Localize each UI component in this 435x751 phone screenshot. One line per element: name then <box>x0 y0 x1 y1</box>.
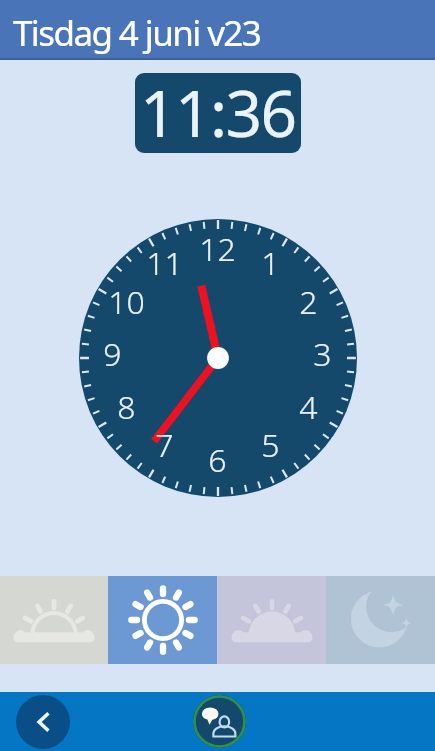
button[interactable]: Messages <box>193 695 246 748</box>
button[interactable] <box>217 576 326 664</box>
button[interactable]: Tisdag 4 juni v23 <box>0 0 435 60</box>
staticText: 11 <box>146 241 183 285</box>
staticText: Tisdag 4 juni v23 <box>13 9 261 57</box>
staticText: 10 <box>108 280 145 324</box>
staticText: 2 <box>299 280 318 324</box>
staticText: 4 <box>299 385 318 429</box>
button[interactable] <box>108 576 217 664</box>
staticText: 7 <box>155 423 174 467</box>
button[interactable] <box>326 576 435 664</box>
button[interactable]: 11:36 <box>135 73 301 153</box>
staticText: 8 <box>117 385 136 429</box>
button[interactable]: 1 <box>79 219 357 497</box>
button[interactable] <box>0 576 108 664</box>
staticText: 12 <box>199 227 236 271</box>
staticText: 3 <box>313 332 332 376</box>
button[interactable]: Back <box>16 695 70 749</box>
staticText: 9 <box>103 332 122 376</box>
staticText: 6 <box>208 438 227 482</box>
staticText: 1 <box>261 241 280 285</box>
staticText: 5 <box>261 423 280 467</box>
staticText: 11:36 <box>140 73 296 153</box>
